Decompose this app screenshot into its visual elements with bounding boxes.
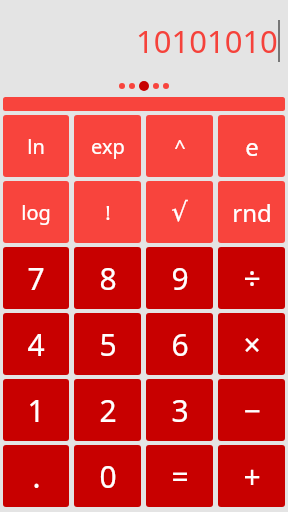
button[interactable]: exp xyxy=(74,115,141,177)
staticText: 5 xyxy=(99,324,117,365)
button[interactable]: log xyxy=(3,181,69,243)
staticText: 1 xyxy=(27,390,45,431)
staticText: rnd xyxy=(232,196,272,229)
button[interactable]: ÷ xyxy=(218,247,285,309)
button[interactable]: 7 xyxy=(3,247,69,309)
staticText: 3 xyxy=(171,390,189,431)
button[interactable]: ln xyxy=(3,115,69,177)
staticText: ! xyxy=(105,199,111,226)
staticText: 7 xyxy=(27,258,45,299)
staticText: 4 xyxy=(27,324,45,365)
button[interactable]: 5 xyxy=(74,313,141,375)
button[interactable]: = xyxy=(146,445,213,507)
button[interactable]: 1 xyxy=(3,379,69,441)
staticText: ln xyxy=(27,133,45,160)
button[interactable]: 10101010 xyxy=(0,0,288,97)
staticText: 10101010 xyxy=(136,20,278,62)
staticText: ^ xyxy=(174,133,186,160)
button[interactable] xyxy=(3,97,285,111)
staticText: + xyxy=(243,456,261,497)
staticText: 8 xyxy=(99,258,117,299)
staticText: = xyxy=(171,456,189,497)
button[interactable]: 3 xyxy=(146,379,213,441)
staticText: 2 xyxy=(99,390,117,431)
button[interactable]: e xyxy=(218,115,285,177)
button[interactable]: 6 xyxy=(146,313,213,375)
button[interactable]: . xyxy=(3,445,69,507)
staticText: . xyxy=(32,456,41,497)
staticText: × xyxy=(243,324,261,365)
button[interactable]: √ xyxy=(146,181,213,243)
button[interactable]: − xyxy=(218,379,285,441)
staticText: − xyxy=(243,390,261,431)
button[interactable]: + xyxy=(218,445,285,507)
staticText: 9 xyxy=(171,258,189,299)
staticText: ÷ xyxy=(243,258,261,299)
button[interactable]: 8 xyxy=(74,247,141,309)
staticText: 0 xyxy=(99,456,117,497)
button[interactable]: 9 xyxy=(146,247,213,309)
button[interactable]: ! xyxy=(74,181,141,243)
button[interactable]: 2 xyxy=(74,379,141,441)
staticText: 6 xyxy=(171,324,189,365)
button[interactable]: × xyxy=(218,313,285,375)
button[interactable]: 4 xyxy=(3,313,69,375)
button[interactable]: rnd xyxy=(218,181,285,243)
staticText: exp xyxy=(91,133,125,160)
staticText: e xyxy=(245,130,259,163)
button[interactable]: 0 xyxy=(74,445,141,507)
button[interactable]: ^ xyxy=(146,115,213,177)
staticText: √ xyxy=(171,197,188,227)
staticText: log xyxy=(21,199,51,226)
